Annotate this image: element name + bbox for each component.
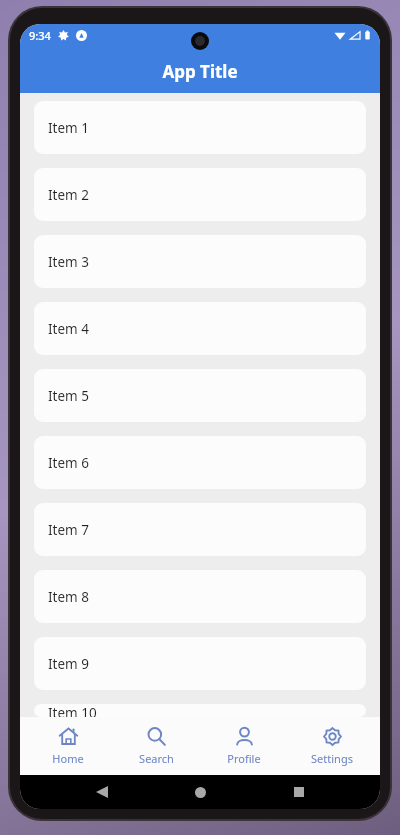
- staticText: Item 6: [48, 454, 89, 472]
- button[interactable]: Item 3: [34, 235, 366, 288]
- button[interactable]: Item 9: [34, 637, 366, 690]
- button[interactable]: Item 5: [34, 369, 366, 422]
- button[interactable]: Item 1: [34, 101, 366, 154]
- staticText: Item 7: [48, 521, 89, 539]
- staticText: 9:34: [29, 28, 51, 43]
- staticText: Item 2: [48, 186, 89, 204]
- staticText: Item 9: [48, 655, 89, 673]
- button[interactable]: Item 7: [34, 503, 366, 556]
- staticText: Search: [139, 751, 174, 766]
- staticText: Item 1: [48, 119, 89, 137]
- staticText: Item 4: [48, 320, 89, 338]
- button[interactable]: Search: [116, 717, 196, 775]
- button[interactable]: Home: [183, 775, 217, 809]
- staticText: Settings: [311, 751, 353, 766]
- staticText: Profile: [227, 751, 261, 766]
- staticText: Item 10: [48, 704, 97, 717]
- button[interactable]: Recent apps: [282, 775, 316, 809]
- button[interactable]: Home: [28, 717, 108, 775]
- staticText: Item 5: [48, 387, 89, 405]
- button[interactable]: Profile: [204, 717, 284, 775]
- staticText: Item 3: [48, 253, 89, 271]
- button[interactable]: Settings: [292, 717, 372, 775]
- button[interactable]: Item 10: [34, 704, 366, 717]
- button[interactable]: Item 8: [34, 570, 366, 623]
- staticText: Home: [52, 751, 84, 766]
- button[interactable]: Back: [85, 775, 119, 809]
- button[interactable]: Item 4: [34, 302, 366, 355]
- staticText: App Title: [162, 60, 238, 83]
- button[interactable]: Item 2: [34, 168, 366, 221]
- staticText: Item 8: [48, 588, 89, 606]
- button[interactable]: Item 6: [34, 436, 366, 489]
